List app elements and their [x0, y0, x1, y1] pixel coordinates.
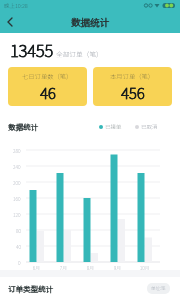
staticText: 46: [40, 82, 56, 104]
staticText: 456: [121, 82, 145, 104]
staticText: 13455: [10, 38, 53, 62]
staticText: 数据统计: [8, 121, 38, 132]
staticText: 数据统计: [71, 15, 110, 29]
staticText: 订单类型统计: [8, 283, 53, 294]
staticText: 本月订单（笔）: [110, 72, 155, 81]
staticText: 单位:笔: [151, 285, 166, 292]
staticText: 七日订单数（笔）: [22, 72, 73, 81]
staticText: 已接单: [105, 123, 122, 131]
staticText: 晚上10:28: [4, 2, 28, 10]
staticText: 全部订单（笔）: [56, 49, 103, 59]
button[interactable]: 单位:笔: [147, 283, 170, 294]
staticText: 订单类型统计: [8, 283, 53, 294]
staticText: 已取消: [141, 123, 158, 131]
staticText: 13455: [10, 38, 53, 62]
button[interactable]: 七日订单数（笔）: [8, 67, 87, 106]
staticText: 46: [40, 82, 56, 104]
button[interactable]: 本月订单（笔）: [93, 67, 172, 106]
staticText: 数据统计: [8, 121, 38, 132]
staticText: 数据统计: [8, 121, 38, 132]
staticText: 订单类型统计: [8, 283, 53, 294]
staticText: 13455: [10, 38, 53, 62]
staticText: 数据统计: [71, 15, 110, 29]
staticText: 456: [121, 82, 145, 104]
staticText: 数据统计: [71, 15, 110, 29]
staticText: 46: [40, 82, 56, 104]
button[interactable]: [0, 12, 20, 32]
staticText: 456: [121, 82, 145, 104]
